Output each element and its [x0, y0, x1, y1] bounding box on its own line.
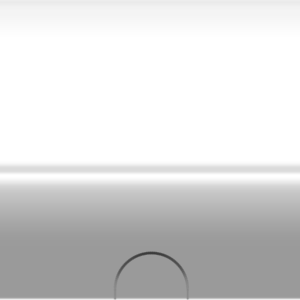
button[interactable]: Home	[0, 0, 300, 300]
